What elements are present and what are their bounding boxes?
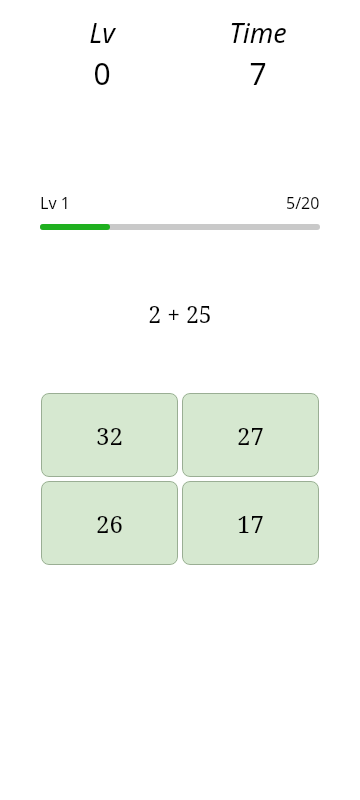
staticText: Lv 1 [40,192,70,214]
staticText: Time [229,14,287,51]
button[interactable]: 26 [41,481,178,565]
button[interactable]: 17 [182,481,319,565]
staticText: 27 [237,419,264,452]
staticText: 0 [93,53,111,94]
staticText: 5/20 [286,192,320,214]
staticText: 26 [96,507,123,540]
staticText: 17 [237,507,264,540]
staticText: 32 [96,419,123,452]
staticText: Lv [89,14,115,51]
button[interactable]: 27 [182,393,319,477]
staticText: 2 + 25 [148,298,212,329]
staticText: 7 [249,53,267,94]
button[interactable]: 32 [41,393,178,477]
